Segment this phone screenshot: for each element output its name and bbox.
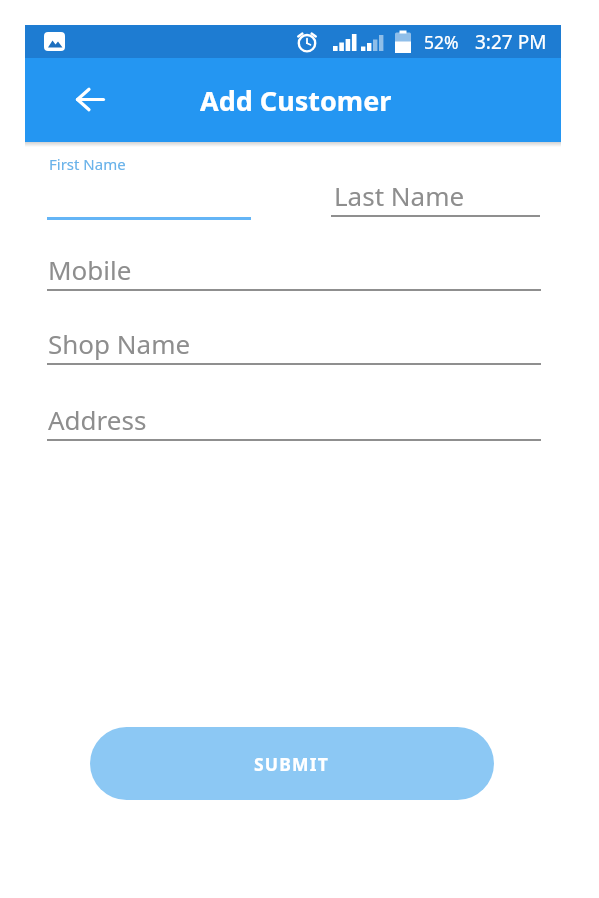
staticText: Mobile	[48, 252, 132, 287]
staticText: First Name	[49, 154, 126, 174]
staticText: 52%	[424, 30, 459, 54]
staticText: SUBMIT	[254, 752, 330, 776]
staticText: Last Name	[334, 178, 465, 213]
button[interactable]: Shop Name	[47, 326, 541, 366]
button[interactable]: First Name	[47, 150, 251, 220]
button[interactable]: Mobile	[47, 252, 541, 292]
staticText: Address	[48, 402, 147, 437]
staticText: Add Customer	[200, 82, 392, 119]
button[interactable]: SUBMIT	[90, 727, 494, 800]
button[interactable]: Last Name	[331, 178, 540, 218]
button[interactable]: Address	[47, 402, 541, 442]
staticText: 3:27 PM	[475, 29, 547, 55]
button[interactable]	[68, 77, 112, 121]
staticText: Shop Name	[48, 326, 191, 361]
